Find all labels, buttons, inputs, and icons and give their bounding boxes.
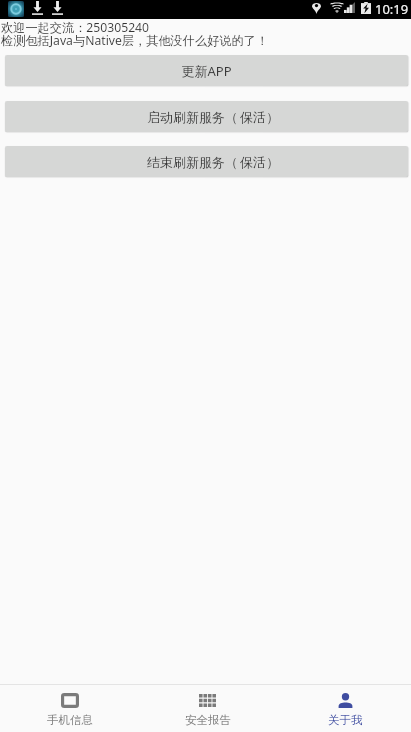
button[interactable]: 启动刷新服务（保活） xyxy=(5,101,408,132)
staticText: 启动刷新服务（保活） xyxy=(147,109,281,125)
button[interactable]: 更新APP xyxy=(5,55,408,86)
staticText: 检测包括Java与Native层，其他没什么好说的了！ xyxy=(1,32,269,49)
staticText: 结束刷新服务（保活） xyxy=(147,154,281,170)
staticText: 10:19 xyxy=(375,0,409,18)
staticText: 欢迎一起交流：250305240 xyxy=(1,19,150,36)
staticText: 更新APP xyxy=(181,62,232,80)
staticText: 手机信息 xyxy=(47,713,93,727)
button[interactable]: 手机信息 xyxy=(1,685,138,732)
staticText: 关于我 xyxy=(328,713,363,727)
button[interactable]: 安全报告 xyxy=(139,685,276,732)
button[interactable]: 结束刷新服务（保活） xyxy=(5,146,408,177)
staticText: 安全报告 xyxy=(185,713,231,727)
button[interactable]: 关于我 xyxy=(277,685,411,732)
